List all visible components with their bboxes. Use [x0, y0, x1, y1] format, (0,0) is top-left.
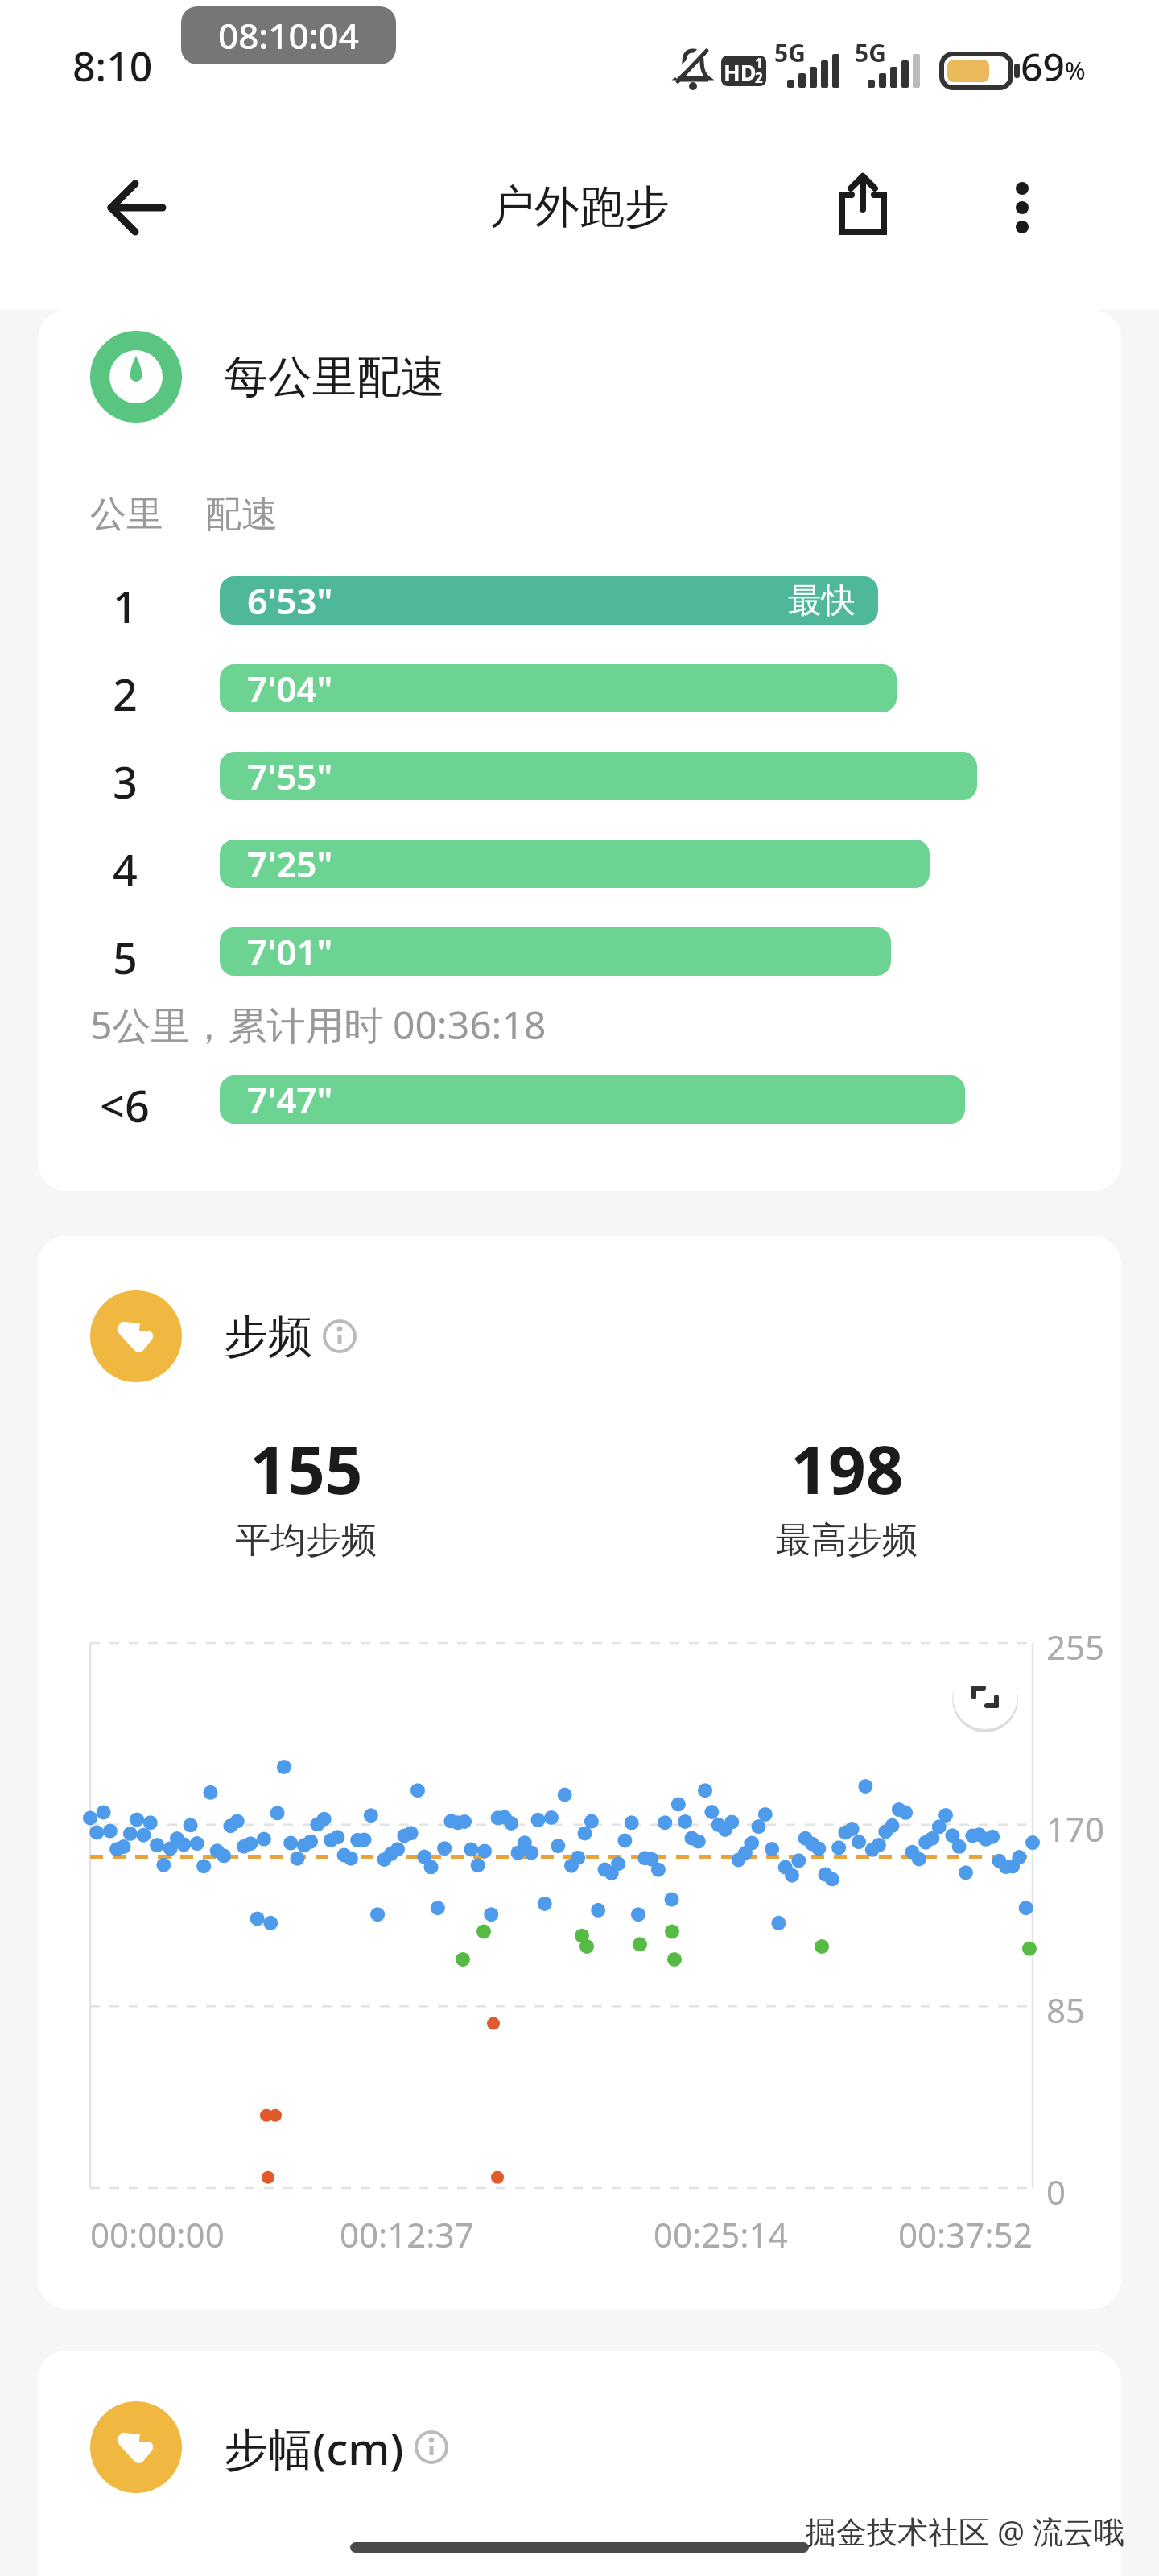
staticText: 3	[113, 752, 138, 800]
staticText: 户外跑步	[489, 179, 670, 236]
button[interactable]: 7'55"	[220, 752, 977, 800]
staticText: 5公里，累计用时 00:36:18	[90, 998, 547, 1051]
staticText: 平均步频	[235, 1518, 377, 1563]
staticText: <6	[100, 1075, 150, 1124]
staticText: 步频	[224, 1309, 312, 1364]
button[interactable]	[998, 177, 1046, 238]
button[interactable]	[105, 177, 169, 238]
button[interactable]: 7'04"	[220, 664, 897, 712]
staticText: 2	[113, 664, 138, 712]
button[interactable]	[322, 1319, 357, 1354]
staticText: 08:10:04	[218, 11, 359, 60]
button[interactable]	[90, 1290, 182, 1382]
button[interactable]: 7'01"	[220, 927, 891, 976]
staticText: 公里	[90, 492, 163, 538]
staticText: 8:10	[72, 39, 153, 93]
staticText: 7'25"	[247, 840, 333, 888]
staticText: 7'04"	[247, 664, 333, 712]
staticText: 155	[250, 1423, 363, 1513]
staticText: 2	[755, 68, 763, 87]
staticText: 85	[1046, 1987, 1086, 2033]
staticText: 0	[1046, 2169, 1066, 2215]
staticText: 最快	[788, 580, 856, 622]
staticText: 7'47"	[247, 1075, 333, 1124]
staticText: 1	[755, 54, 763, 72]
button[interactable]	[953, 1665, 1017, 1729]
staticText: 5G	[855, 36, 886, 69]
staticText: 6'53"	[247, 576, 333, 625]
button[interactable]	[834, 172, 892, 238]
staticText: 配速	[205, 492, 278, 538]
staticText: 00:00:00	[90, 2211, 225, 2257]
staticText: 00:37:52	[898, 2211, 1033, 2257]
staticText: 5	[113, 927, 138, 976]
button[interactable]: 6'53"	[220, 576, 878, 625]
staticText: 最高步频	[776, 1518, 918, 1563]
button[interactable]	[90, 2401, 182, 2493]
staticText: 7'01"	[247, 927, 333, 976]
staticText: 4	[113, 840, 138, 888]
button[interactable]: 7'47"	[220, 1075, 965, 1124]
staticText: 7'55"	[247, 752, 333, 800]
staticText: 170	[1046, 1806, 1105, 1851]
staticText: 5G	[774, 36, 806, 69]
staticText: 198	[790, 1423, 904, 1513]
staticText: 掘金技术社区 @ 流云哦	[806, 2510, 1124, 2552]
staticText: HD	[724, 57, 757, 87]
staticText: 00:12:37	[340, 2211, 474, 2257]
staticText: 1	[113, 576, 138, 625]
staticText: 每公里配速	[224, 349, 445, 405]
staticText: %	[1065, 54, 1086, 87]
staticText: 00:25:14	[654, 2211, 788, 2257]
button[interactable]: 7'25"	[220, 840, 930, 888]
button[interactable]	[414, 2429, 449, 2465]
staticText: 255	[1046, 1624, 1105, 1670]
staticText: 69	[1021, 40, 1065, 93]
staticText: 步幅(cm)	[224, 2417, 404, 2478]
